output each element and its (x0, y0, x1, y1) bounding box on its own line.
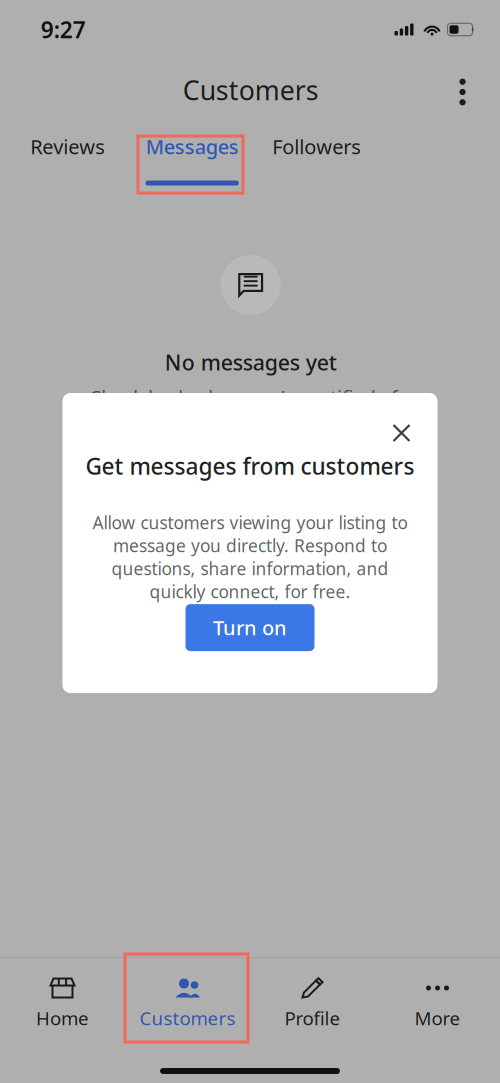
staticText: Profile (284, 1006, 340, 1030)
staticText: Home (36, 1006, 89, 1030)
staticText: No messages yet (165, 348, 337, 376)
button[interactable]: Home (0, 960, 125, 1027)
button[interactable]: More (375, 960, 500, 1027)
button[interactable]: Messages (130, 115, 255, 193)
staticText: Turn on (213, 614, 287, 641)
button[interactable]: Reviews (6, 115, 130, 193)
button[interactable]: Customers (125, 960, 250, 1027)
button[interactable]: More options (445, 71, 479, 109)
staticText: 9:27 (41, 14, 86, 44)
staticText: Messages (146, 133, 239, 160)
staticText: More (414, 1006, 460, 1030)
staticText: Customers (139, 1006, 235, 1030)
staticText: Allow customers viewing your listing to (92, 511, 407, 534)
staticText: Reviews (30, 133, 105, 160)
staticText: quickly connect, for free. (149, 580, 350, 603)
button[interactable]: Close (381, 413, 421, 453)
button[interactable]: Turn on (185, 604, 314, 651)
staticText: Get messages from customers (85, 451, 414, 481)
staticText: message you directly. Respond to (113, 534, 387, 557)
staticText: Followers (272, 133, 361, 160)
button[interactable]: Profile (250, 960, 375, 1027)
staticText: Check back when you’re notified of a (89, 384, 412, 409)
button[interactable]: Followers (255, 115, 379, 193)
staticText: questions, share information, and (111, 557, 388, 580)
staticText: Customers (183, 72, 319, 108)
